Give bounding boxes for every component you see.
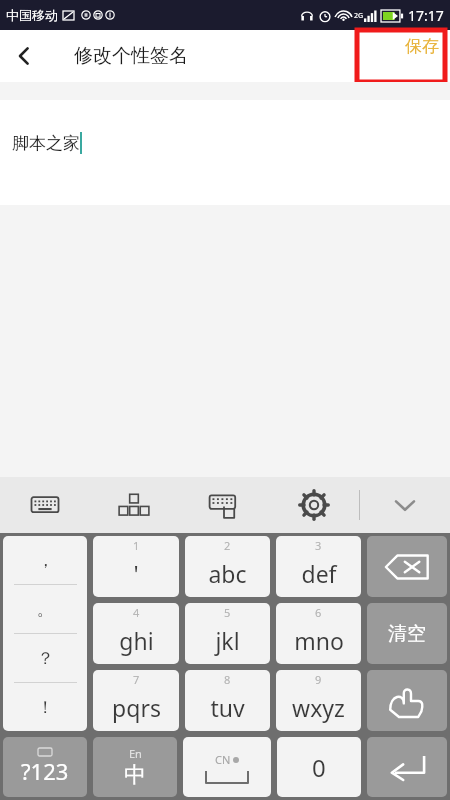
button[interactable]: Back [0,32,48,80]
staticText: CN [215,752,231,767]
staticText: 8 [224,672,231,687]
button[interactable]: 7 [93,670,179,731]
button[interactable]: Hide keyboard [360,477,450,533]
button[interactable]: Gesture input [367,670,447,731]
staticText: En [129,746,142,761]
staticText: ！ [37,697,54,718]
staticText: 保存 [405,36,439,57]
button[interactable]: 9 [276,670,361,731]
staticText: tuv [210,692,245,723]
staticText: 4 [133,605,140,620]
staticText: ， [37,550,54,571]
staticText: 2 [224,538,231,553]
staticText: 中 [124,761,146,789]
button[interactable]: Handwriting input [179,477,269,533]
button[interactable]: Keyboard [0,477,89,533]
staticText: 1 [133,538,140,553]
staticText: ghi [119,625,154,656]
button[interactable]: ?123 [3,737,87,797]
staticText: 17:17 [408,6,444,25]
staticText: 9 [315,672,322,687]
button[interactable]: 8 [185,670,270,731]
button[interactable]: 保存 [357,30,445,82]
staticText: 6 [315,605,322,620]
button[interactable]: Settings [269,477,359,533]
button[interactable]: Clear [367,603,447,664]
staticText: 中国移动 [6,7,58,23]
staticText: abc [208,558,247,589]
staticText: ？ [37,648,54,669]
staticText: 清空 [388,622,426,646]
button[interactable]: 4 [93,603,179,664]
button[interactable]: Backspace [367,536,447,597]
staticText: wxyz [292,692,345,723]
button[interactable] [367,737,447,797]
button[interactable]: 0 [277,737,361,797]
staticText: mno [294,625,344,656]
staticText: 5 [224,605,231,620]
staticText: 0 [312,751,326,784]
button[interactable]: Arrow keys [89,477,179,533]
staticText: 修改个性签名 [74,44,188,68]
button[interactable]: 5 [185,603,270,664]
staticText: def [301,558,337,589]
staticText: pqrs [112,692,161,723]
staticText: 2G [354,11,364,21]
button[interactable]: 1 [93,536,179,597]
staticText: 。 [37,599,54,620]
staticText: ?123 [21,756,69,786]
staticText: 脚本之家 [12,133,80,154]
button[interactable]: 3 [276,536,361,597]
button[interactable]: 6 [276,603,361,664]
staticText: 3 [315,538,322,553]
staticText: ' [133,558,139,589]
button[interactable]: ， [3,536,87,731]
button[interactable]: CN [183,737,271,797]
button[interactable]: En [93,737,177,797]
staticText: 7 [133,672,140,687]
button[interactable]: 2 [185,536,270,597]
staticText: jkl [215,625,240,656]
